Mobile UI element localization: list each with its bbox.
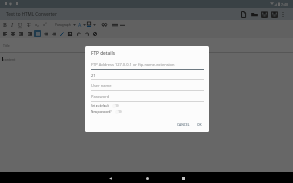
button[interactable]: Redo <box>83 29 90 38</box>
staticText: CANCEL <box>177 122 190 126</box>
button[interactable]: Set as default <box>91 103 120 108</box>
button[interactable]: Open file <box>249 8 259 20</box>
staticText: Set as default <box>91 104 109 108</box>
button[interactable]: Justify <box>33 29 41 38</box>
staticText: Text to HTML Converter <box>6 11 57 17</box>
staticText: New password? <box>91 110 112 114</box>
staticText: A <box>78 21 82 28</box>
button[interactable]: B <box>1 20 8 29</box>
staticText: T <box>27 21 31 29</box>
button[interactable]: Decrease indent <box>50 29 57 38</box>
button[interactable]: Align left <box>1 29 8 38</box>
staticText: Title <box>3 43 10 48</box>
button[interactable]: T <box>25 20 32 29</box>
staticText: FTP Address 127.0.0.1 or ftp.name.extens… <box>91 62 175 67</box>
button[interactable]: Undo <box>75 29 82 38</box>
button[interactable]: U <box>17 20 24 29</box>
button[interactable]: Paragraph <box>53 20 72 29</box>
button[interactable]: New password? <box>91 109 123 114</box>
button[interactable]: Bulleted list <box>110 20 119 29</box>
staticText: U <box>18 21 23 29</box>
staticText: content <box>3 57 16 62</box>
button[interactable]: OK <box>194 119 205 129</box>
staticText: Paragraph <box>55 23 71 27</box>
staticText: x₂ <box>35 22 39 28</box>
button[interactable]: Increase indent <box>42 29 49 38</box>
button[interactable]: Save <box>259 8 269 20</box>
button[interactable]: Paragraph style <box>72 20 76 29</box>
button[interactable]: Insert image <box>66 29 73 38</box>
staticText: I <box>11 21 14 29</box>
staticText: FTP details <box>91 50 116 56</box>
button[interactable]: Indent <box>26 29 33 38</box>
button[interactable]: Quote <box>101 20 108 29</box>
button[interactable]: More options <box>279 8 287 20</box>
staticText: Password <box>91 94 110 99</box>
staticText: OK <box>197 122 202 126</box>
staticText: 21 <box>91 73 96 78</box>
button[interactable]: Horizontal rule <box>119 20 126 29</box>
button[interactable]: Align center <box>9 29 16 38</box>
button[interactable]: Save as <box>269 8 279 20</box>
button[interactable]: Highlight colour <box>92 20 96 29</box>
button[interactable]: Clear formatting <box>91 29 98 38</box>
button[interactable]: Align right <box>17 29 24 38</box>
button[interactable]: Subscript <box>33 20 40 29</box>
button[interactable]: Recent apps <box>174 174 192 183</box>
staticText: B <box>3 21 7 29</box>
button[interactable]: Highlight <box>86 20 92 29</box>
button[interactable]: Back <box>101 174 119 183</box>
button[interactable]: I <box>9 20 16 29</box>
button[interactable]: Home <box>138 174 156 183</box>
staticText: 7:48 <box>281 2 289 7</box>
button[interactable]: Link <box>58 29 65 38</box>
button[interactable]: Text colour <box>82 20 86 29</box>
button[interactable]: CANCEL <box>174 119 193 129</box>
button[interactable]: New file <box>238 8 248 20</box>
staticText: User name <box>91 83 112 88</box>
button[interactable]: A <box>77 20 82 29</box>
staticText: x² <box>43 22 47 28</box>
button[interactable]: Superscript <box>41 20 48 29</box>
